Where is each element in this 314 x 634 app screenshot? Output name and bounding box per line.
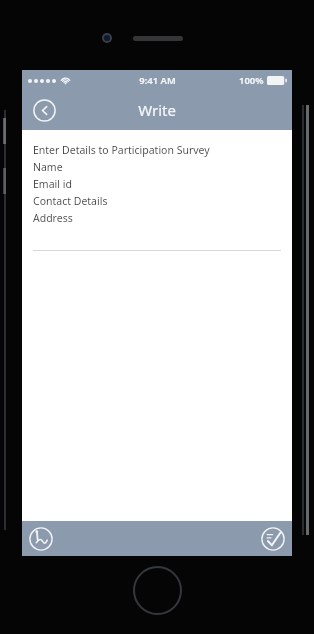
staticText: Enter Details to Participation Survey	[33, 143, 210, 157]
staticText: 100%	[239, 74, 264, 87]
button[interactable]: Done	[258, 524, 288, 554]
staticText: Email id	[33, 177, 72, 191]
staticText: Name	[33, 160, 63, 174]
staticText: Address	[33, 211, 73, 225]
staticText: Write	[138, 100, 176, 120]
button[interactable]: Signature	[26, 524, 56, 554]
button[interactable]: Back	[30, 96, 58, 124]
staticText: Contact Details	[33, 194, 108, 208]
staticText: 9:41 AM	[139, 74, 176, 87]
